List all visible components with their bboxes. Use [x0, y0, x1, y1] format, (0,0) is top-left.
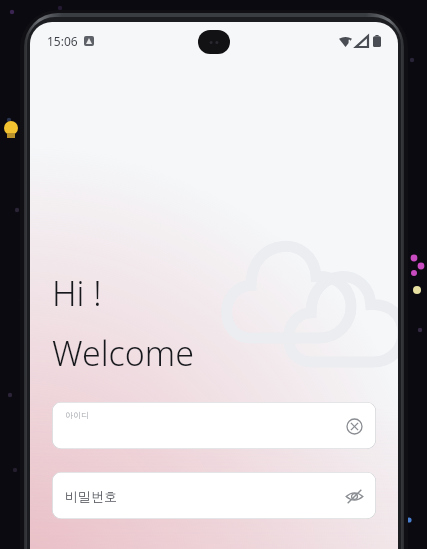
button[interactable]: 아이디 — [52, 402, 376, 449]
button[interactable]: Clear text — [341, 413, 367, 439]
staticText: 비밀번호 — [65, 488, 117, 504]
button[interactable]: 비밀번호 — [52, 472, 376, 519]
button[interactable]: Show password — [341, 483, 367, 509]
staticText: Hi ! — [52, 270, 102, 316]
staticText: 15:06 — [47, 33, 78, 49]
staticText: 아이디 — [65, 410, 89, 420]
staticText: Welcome — [52, 330, 194, 376]
